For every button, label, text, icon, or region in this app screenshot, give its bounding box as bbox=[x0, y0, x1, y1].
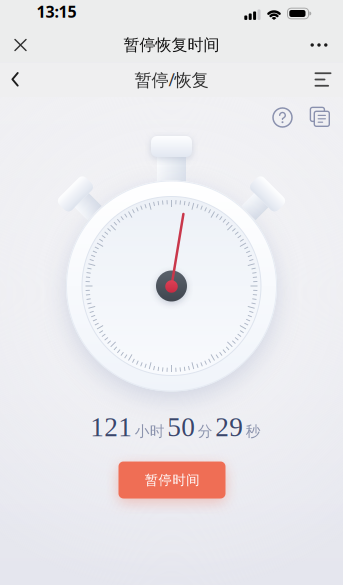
staticText: 暂停/恢复 bbox=[134, 68, 208, 91]
staticText: 121 bbox=[90, 412, 132, 442]
staticText: 秒 bbox=[246, 422, 261, 440]
button[interactable]: Menu bbox=[303, 62, 343, 97]
staticText: 50 bbox=[167, 412, 195, 442]
button[interactable]: More bbox=[297, 28, 341, 62]
button[interactable]: Copy bbox=[310, 107, 330, 127]
staticText: 暂停时间 bbox=[145, 472, 199, 488]
staticText: 13:15 bbox=[36, 1, 76, 22]
staticText: 29 bbox=[215, 412, 243, 442]
button[interactable]: Back bbox=[0, 62, 30, 97]
button[interactable]: Close bbox=[2, 28, 39, 62]
staticText: 分 bbox=[198, 422, 213, 440]
button[interactable]: 暂停时间 bbox=[118, 461, 225, 498]
staticText: 暂停恢复时间 bbox=[123, 35, 219, 55]
button[interactable]: Help bbox=[273, 108, 292, 127]
staticText: 小时 bbox=[135, 422, 165, 440]
